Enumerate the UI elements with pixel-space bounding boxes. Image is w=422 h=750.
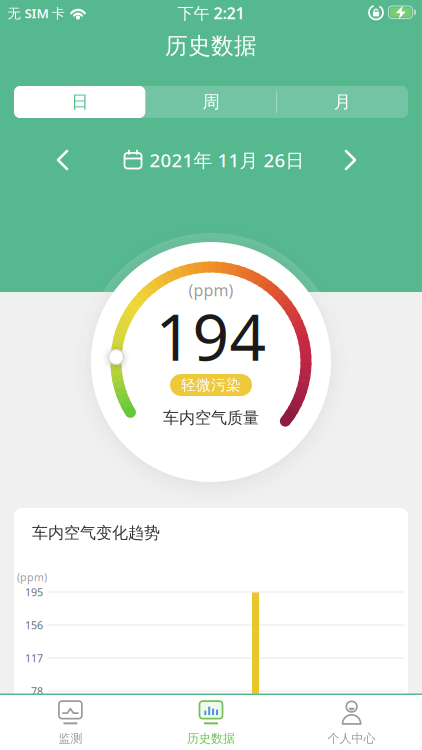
staticText: 下午 2:21 <box>177 2 244 24</box>
staticText: 车内空气质量 <box>163 408 259 428</box>
button[interactable]: 监测 <box>0 697 141 749</box>
staticText: 156 <box>25 618 43 632</box>
staticText: 78 <box>31 684 43 698</box>
staticText: 日 <box>71 91 88 113</box>
staticText: 月 <box>334 91 351 113</box>
staticText: 周 <box>202 91 219 113</box>
staticText: 个人中心 <box>328 731 376 746</box>
button[interactable]: 日 <box>14 86 145 118</box>
staticText: 195 <box>25 585 43 599</box>
staticText: 无 SIM 卡 <box>7 4 64 22</box>
staticText: 历史数据 <box>165 32 257 60</box>
staticText: 轻微污染 <box>181 376 241 394</box>
staticText: (ppm) <box>188 279 233 301</box>
staticText: 监测 <box>58 731 82 746</box>
button[interactable]: 个人中心 <box>281 697 422 749</box>
button[interactable]: 2021年 11月 26日 <box>123 148 304 172</box>
staticText: 194 <box>155 293 266 378</box>
button[interactable]: 历史数据 <box>141 697 281 749</box>
staticText: 历史数据 <box>187 731 235 746</box>
staticText: 2021年 11月 26日 <box>149 148 304 172</box>
button[interactable]: 月 <box>277 86 408 118</box>
staticText: 117 <box>25 651 43 665</box>
staticText: 车内空气变化趋势 <box>32 523 160 543</box>
button[interactable]: 后一天 <box>343 148 367 172</box>
button[interactable]: 前一天 <box>55 148 79 172</box>
button[interactable]: 周 <box>145 86 277 118</box>
staticText: (ppm) <box>17 570 47 584</box>
